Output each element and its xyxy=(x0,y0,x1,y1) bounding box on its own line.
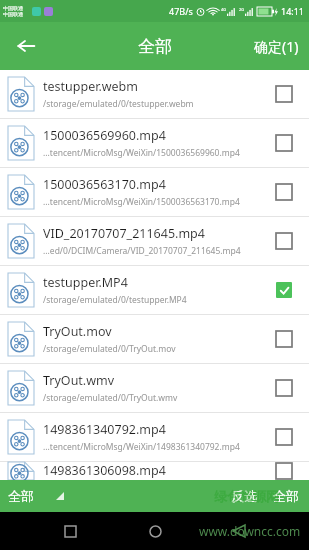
staticText: testupper.MP4 xyxy=(43,274,128,291)
button[interactable]: Select file xyxy=(269,79,299,109)
staticText: 1500036569960.mp4 xyxy=(43,127,166,144)
button[interactable]: 1498361340792.mp4 xyxy=(0,413,309,462)
staticText: 1498361306098.mp4 xyxy=(43,462,166,479)
staticText: 1498361340792.mp4 xyxy=(43,421,166,438)
button[interactable]: testupper.MP4 xyxy=(0,266,309,315)
staticText: 14:11 xyxy=(281,5,305,17)
button[interactable]: testupper.webm xyxy=(0,70,309,119)
staticText: 反选 xyxy=(231,488,257,504)
staticText: /storage/emulated/0/testupper.MP4 xyxy=(43,294,187,306)
button[interactable]: 1498361306098.mp4 xyxy=(0,462,309,480)
button[interactable]: Select file xyxy=(269,128,299,158)
button[interactable]: TryOut.mov xyxy=(0,315,309,364)
button[interactable]: 1500036569960.mp4 xyxy=(0,119,309,168)
button[interactable]: Back xyxy=(6,26,46,66)
staticText: 全部 xyxy=(8,488,34,504)
button[interactable]: 1500036563170.mp4 xyxy=(0,168,309,217)
staticText: 中国联通 xyxy=(3,11,23,17)
staticText: 1500036563170.mp4 xyxy=(43,176,166,193)
staticText: TryOut.mov xyxy=(43,323,112,340)
button[interactable]: 反选 xyxy=(223,480,265,512)
button[interactable]: TryOut.wmv xyxy=(0,364,309,413)
staticText: /storage/emulated/0/testupper.webm xyxy=(43,98,194,110)
button[interactable]: Select file xyxy=(269,275,299,305)
button[interactable]: Recents xyxy=(55,516,85,546)
button[interactable]: Select file xyxy=(269,422,299,452)
staticText: /storage/emulated/0/TryOut.wmv xyxy=(43,392,178,404)
button[interactable]: Select file xyxy=(269,177,299,207)
staticText: ...tencent/MicroMsg/WeiXin/1500036563170… xyxy=(43,196,240,208)
button[interactable]: 全部 xyxy=(265,480,309,512)
button[interactable]: Select file xyxy=(269,373,299,403)
staticText: 2G xyxy=(239,7,245,12)
staticText: ...tencent/MicroMsg/WeiXin/1500036569960… xyxy=(43,147,240,159)
button[interactable]: Select file xyxy=(269,226,299,256)
button[interactable]: Back xyxy=(224,516,254,546)
button[interactable]: 确定(1) xyxy=(244,25,309,68)
button[interactable]: Select file xyxy=(269,462,299,480)
staticText: 确定(1) xyxy=(254,37,299,56)
staticText: TryOut.wmv xyxy=(43,372,115,389)
staticText: 绿色资源网 xyxy=(214,488,279,504)
staticText: 全部 xyxy=(138,36,172,57)
staticText: 中国联通 xyxy=(3,5,23,11)
staticText: 47B/s xyxy=(169,5,193,17)
staticText: VID_20170707_211645.mp4 xyxy=(43,225,205,242)
staticText: 全部 xyxy=(273,488,299,504)
button[interactable]: Home xyxy=(140,516,170,546)
staticText: /storage/emulated/0/TryOut.mov xyxy=(43,343,176,355)
button[interactable]: Select file xyxy=(269,324,299,354)
staticText: ...ed/0/DCIM/Camera/VID_20170707_211645.… xyxy=(43,245,241,257)
staticText: www.downcc.com xyxy=(199,523,301,539)
button[interactable]: 全部 xyxy=(0,488,72,504)
button[interactable]: VID_20170707_211645.mp4 xyxy=(0,217,309,266)
staticText: testupper.webm xyxy=(43,78,138,95)
staticText: 4G xyxy=(221,7,227,12)
staticText: ...tencent/MicroMsg/WeiXin/1498361340792… xyxy=(43,441,240,453)
